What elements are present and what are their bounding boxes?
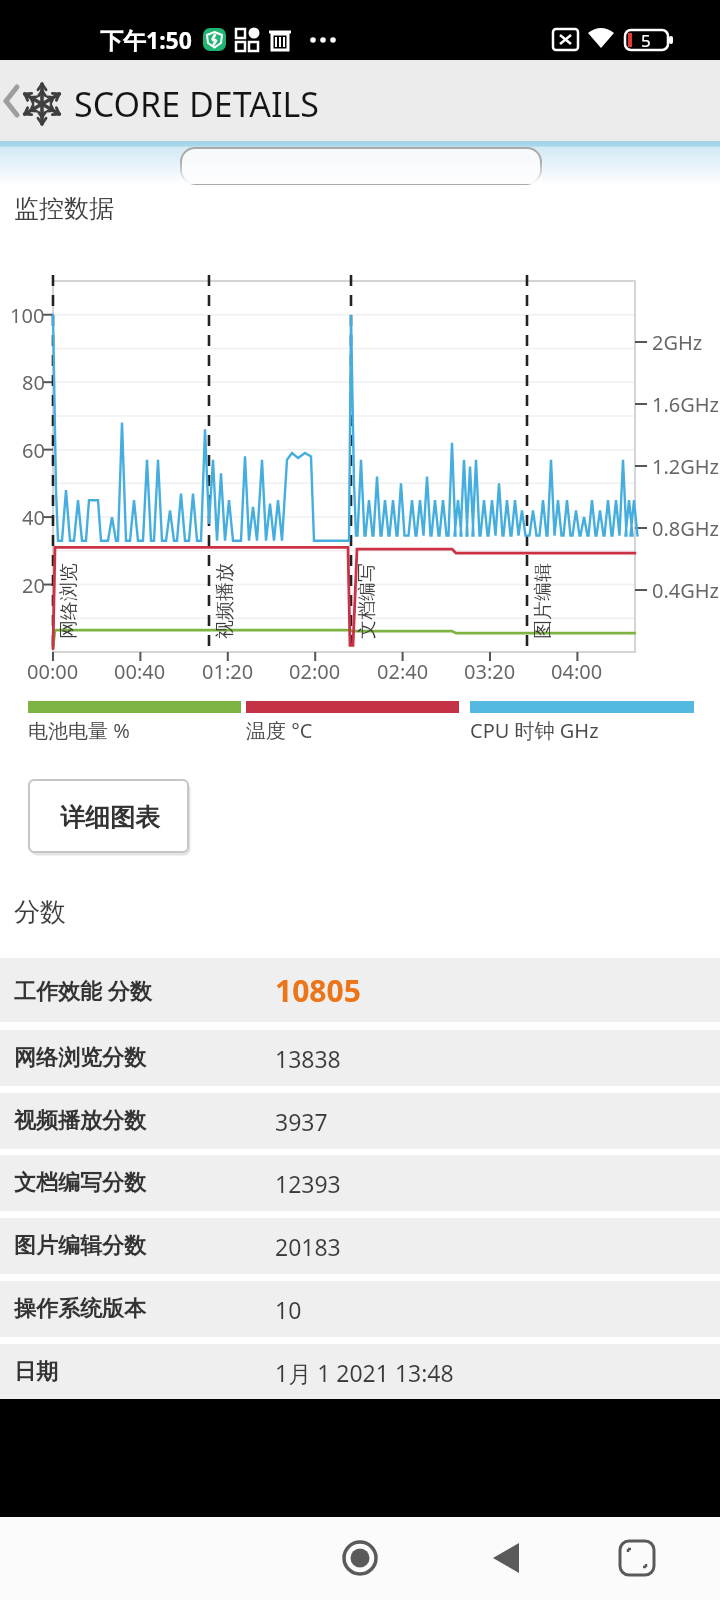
staticText: 温度 °C <box>246 717 313 744</box>
staticText: 操作系统版本 <box>14 1295 146 1323</box>
staticText: 图片编辑 <box>531 563 555 639</box>
staticText: 文档编写分数 <box>14 1169 146 1197</box>
staticText: 80 <box>22 369 45 395</box>
staticText: 下午1:50 <box>100 24 192 55</box>
staticText: 图片编辑分数 <box>14 1232 146 1260</box>
staticText: 00:00 <box>27 658 79 684</box>
staticText: 10 <box>275 1294 302 1325</box>
staticText: 文档编写 <box>355 563 379 639</box>
staticText: 60 <box>22 437 45 463</box>
button[interactable]: 图片编辑分数 <box>0 1218 720 1274</box>
staticText: 网络浏览分数 <box>14 1044 146 1072</box>
staticText: CPU 时钟 GHz <box>470 717 599 744</box>
button[interactable]: 文档编写分数 <box>0 1155 720 1211</box>
staticText: 2GHz <box>652 329 703 356</box>
staticText: 日期 <box>14 1358 58 1386</box>
staticText: 电池电量 % <box>28 717 130 744</box>
staticText: 20 <box>22 572 45 598</box>
button[interactable]: 工作效能 分数 <box>0 958 720 1022</box>
staticText: 工作效能 分数 <box>14 975 152 1005</box>
staticText: 03:20 <box>464 658 516 684</box>
button[interactable]: 视频播放分数 <box>0 1093 720 1149</box>
staticText: 网络浏览 <box>57 563 81 639</box>
staticText: 02:40 <box>377 658 429 684</box>
button[interactable]: 操作系统版本 <box>0 1281 720 1337</box>
button[interactable]: 网络浏览分数 <box>0 1030 720 1086</box>
staticText: 01:20 <box>202 658 254 684</box>
staticText: 20183 <box>275 1231 341 1262</box>
staticText: 40 <box>22 504 45 530</box>
button[interactable] <box>609 1530 665 1586</box>
staticText: 00:40 <box>114 658 166 684</box>
staticText: 0.8GHz <box>652 515 720 542</box>
staticText: 详细图表 <box>60 802 160 833</box>
staticText: 分数 <box>14 896 66 929</box>
staticText: 10805 <box>275 970 361 1011</box>
staticText: 视频播放分数 <box>14 1107 146 1135</box>
staticText: 1月 1 2021 13:48 <box>275 1357 454 1388</box>
staticText: 1.6GHz <box>652 391 720 418</box>
staticText: 0.4GHz <box>652 577 720 604</box>
button[interactable] <box>332 1530 388 1586</box>
staticText: 1.2GHz <box>652 453 720 480</box>
staticText: 02:00 <box>289 658 341 684</box>
button[interactable] <box>478 1530 534 1586</box>
staticText: 监控数据 <box>14 193 114 224</box>
staticText: SCORE DETAILS <box>74 81 319 127</box>
button[interactable]: 详细图表 <box>28 779 191 856</box>
staticText: 100 <box>10 302 45 328</box>
button[interactable] <box>0 60 70 141</box>
staticText: 视频播放 <box>213 563 237 639</box>
staticText: 5 <box>641 29 651 52</box>
button[interactable]: 日期 <box>0 1344 720 1400</box>
staticText: 3937 <box>275 1106 328 1137</box>
staticText: 04:00 <box>551 658 603 684</box>
staticText: 12393 <box>275 1168 341 1199</box>
staticText: 13838 <box>275 1043 341 1074</box>
